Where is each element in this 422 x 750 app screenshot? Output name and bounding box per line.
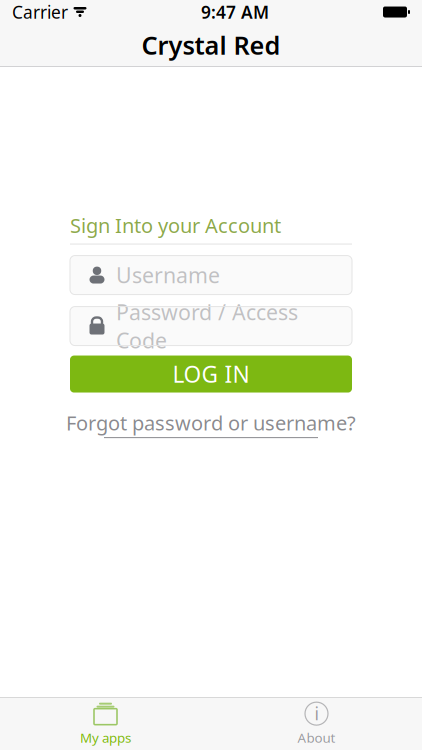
button[interactable]: Forgot password or username? — [60, 404, 362, 444]
staticText: Carrier — [12, 0, 68, 23]
staticText: LOG IN — [172, 359, 249, 389]
staticText: Crystal Red — [141, 28, 280, 62]
staticText: Forgot password or username? — [66, 410, 356, 436]
staticText: Password / Access Code — [116, 298, 298, 354]
staticText: Sign Into your Account — [70, 212, 281, 239]
button[interactable]: My apps — [0, 698, 211, 750]
button[interactable]: i — [211, 698, 422, 750]
button[interactable]: LOG IN — [70, 356, 352, 393]
staticText: i — [314, 702, 318, 725]
staticText: Username — [116, 261, 220, 289]
staticText: About — [297, 729, 335, 746]
staticText: 9:47 AM — [201, 0, 269, 23]
staticText: My apps — [80, 729, 131, 746]
